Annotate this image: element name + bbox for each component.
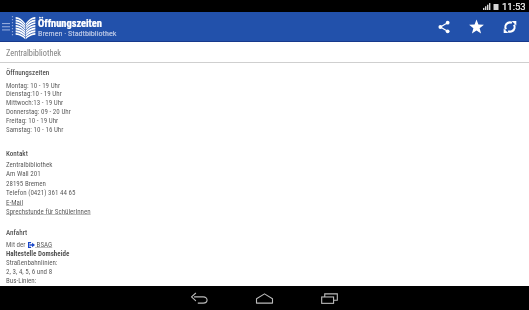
staticText: Öffnungszeiten: [6, 68, 50, 76]
staticText: Montag: 10 - 19 Uhr: [6, 82, 61, 90]
staticText: Mit der: [6, 241, 28, 249]
staticText: Zentralbibliothek: [6, 161, 53, 169]
staticText: Sprechstunde für SchülerInnen: [6, 208, 91, 216]
staticText: Telefon (0421) 361 44 65: [6, 189, 76, 197]
staticText: 2, 3, 4, 5, 6 und 8: [6, 268, 53, 276]
staticText: Bremen · Stadtbibliothek: [38, 28, 117, 37]
button[interactable]: Back: [167, 286, 232, 310]
button[interactable]: E-Mail: [6, 199, 24, 207]
button[interactable]: Recents: [297, 286, 362, 310]
staticText: Dienstag:10 - 19 Uhr: [6, 90, 62, 98]
staticText: Donnerstag: 09 - 20 Uhr: [6, 108, 71, 116]
staticText: Am Wall 201: [6, 170, 41, 178]
staticText: Samstag: 10 - 16 Uhr: [6, 126, 64, 134]
button[interactable]: Favorite: [460, 12, 493, 41]
button[interactable]: BSAG: [35, 241, 53, 249]
staticText: Öffnungszeiten: [38, 17, 102, 29]
button[interactable]: Share: [427, 12, 460, 41]
button[interactable]: Home: [232, 286, 297, 310]
staticText: Anfahrt: [6, 228, 28, 236]
staticText: Zentralbibliothek: [6, 48, 62, 58]
staticText: Kontakt: [6, 149, 28, 157]
button[interactable]: Zentralbibliothek: [0, 42, 529, 63]
staticText: Haltestelle Domsheide: [6, 250, 70, 258]
staticText: BSAG: [35, 241, 53, 249]
button[interactable]: Sprechstunde für SchülerInnen: [6, 208, 91, 216]
staticText: 11:53: [502, 1, 526, 12]
staticText: Freitag: 10 - 19 Uhr: [6, 117, 59, 125]
button[interactable]: Menu: [0, 12, 11, 41]
staticText: Straßenbahnlinien:: [6, 259, 58, 267]
staticText: Mittwoch:13 - 19 Uhr: [6, 99, 64, 107]
staticText: E-Mail: [6, 199, 24, 207]
staticText: Bus-Linien:: [6, 277, 37, 285]
staticText: 28195 Bremen: [6, 180, 46, 188]
button[interactable]: Refresh: [493, 12, 526, 41]
